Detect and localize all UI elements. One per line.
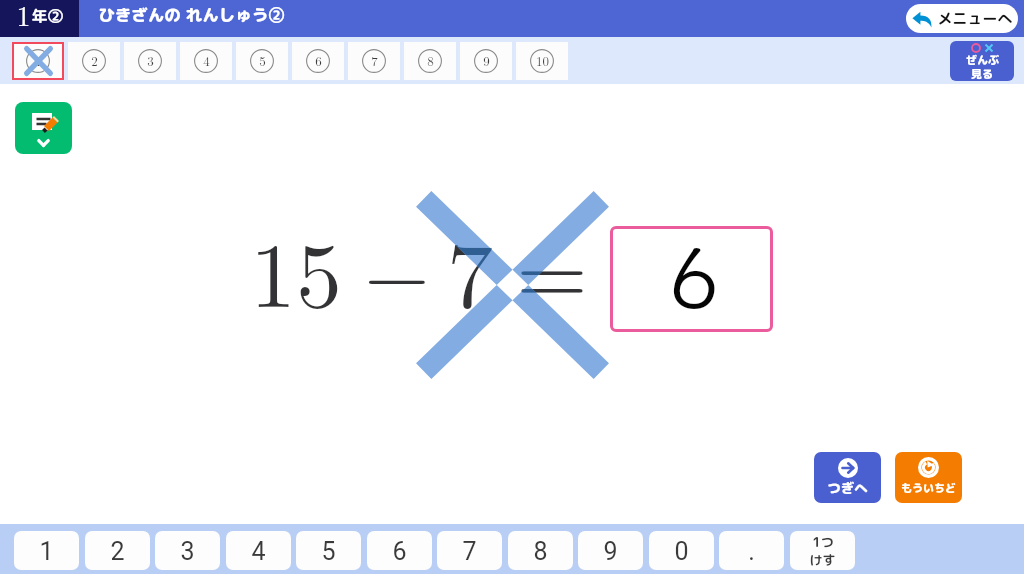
staticText: 1つ [812, 533, 834, 551]
staticText: 15 [250, 203, 342, 333]
button[interactable]: 1つ [790, 531, 855, 570]
button[interactable]: 2 [68, 42, 120, 80]
button[interactable]: もういちど [895, 452, 962, 503]
button[interactable]: 9 [460, 42, 512, 80]
staticText: 2 [110, 537, 125, 566]
staticText: 見る [971, 66, 993, 81]
staticText: けす [809, 551, 836, 569]
staticText: 6 [315, 51, 322, 69]
staticText: = [516, 201, 588, 331]
button[interactable]: メモ [15, 102, 72, 154]
button[interactable]: 5 [296, 531, 361, 570]
button[interactable]: 0 [649, 531, 714, 570]
button[interactable]: 9 [578, 531, 643, 570]
button[interactable]: 7 [348, 42, 400, 80]
staticText: 7 [462, 537, 477, 566]
button[interactable]: 4 [180, 42, 232, 80]
staticText: 2 [91, 51, 98, 69]
staticText: 7 [447, 203, 493, 333]
staticText: 1 [35, 51, 42, 69]
staticText: 10 [536, 51, 549, 69]
staticText: 8 [427, 51, 434, 69]
staticText: 9 [483, 51, 490, 69]
staticText: ひきざんの れんしゅう② [98, 3, 285, 26]
button[interactable]: 3 [124, 42, 176, 80]
button[interactable]: 5 [236, 42, 288, 80]
button[interactable]: . [719, 531, 784, 570]
staticText: − [364, 208, 430, 327]
staticText: 8 [533, 537, 548, 566]
staticText: 5 [321, 537, 336, 566]
staticText: 0 [674, 537, 689, 566]
staticText: 6 [668, 209, 720, 315]
button[interactable]: ぜんぶ [950, 41, 1014, 81]
button[interactable]: 1 [14, 531, 79, 570]
button[interactable]: 2 [85, 531, 150, 570]
button[interactable]: 6 [367, 531, 432, 570]
staticText: 1 [16, 0, 31, 31]
staticText: 5 [259, 51, 266, 69]
button[interactable]: 8 [508, 531, 573, 570]
staticText: 4 [203, 51, 210, 69]
staticText: もういちど [901, 480, 956, 495]
staticText: 1 [39, 537, 54, 566]
staticText: 3 [180, 537, 195, 566]
staticText: 3 [147, 51, 154, 69]
staticText: 9 [603, 537, 618, 566]
button[interactable]: 4 [226, 531, 291, 570]
button[interactable]: 10 [516, 42, 568, 80]
button[interactable]: メニューへ [906, 4, 1018, 33]
staticText: . [748, 537, 755, 566]
staticText: メニューへ [937, 8, 1013, 29]
button[interactable]: つぎへ [814, 452, 881, 503]
staticText: 6 [392, 537, 407, 566]
button[interactable]: 1 [12, 42, 64, 80]
staticText: 年② [31, 5, 64, 27]
button[interactable]: 6 [610, 226, 773, 332]
button[interactable]: 6 [292, 42, 344, 80]
staticText: 4 [251, 537, 266, 566]
button[interactable]: 3 [155, 531, 220, 570]
staticText: 7 [447, 203, 493, 333]
staticText: つぎへ [827, 478, 868, 497]
staticText: − [364, 208, 430, 327]
button[interactable]: 7 [437, 531, 502, 570]
button[interactable]: 8 [404, 42, 456, 80]
staticText: = [516, 201, 588, 331]
staticText: 15 [250, 203, 342, 333]
staticText: 7 [371, 51, 378, 69]
staticText: ぜんぶ [966, 52, 999, 67]
